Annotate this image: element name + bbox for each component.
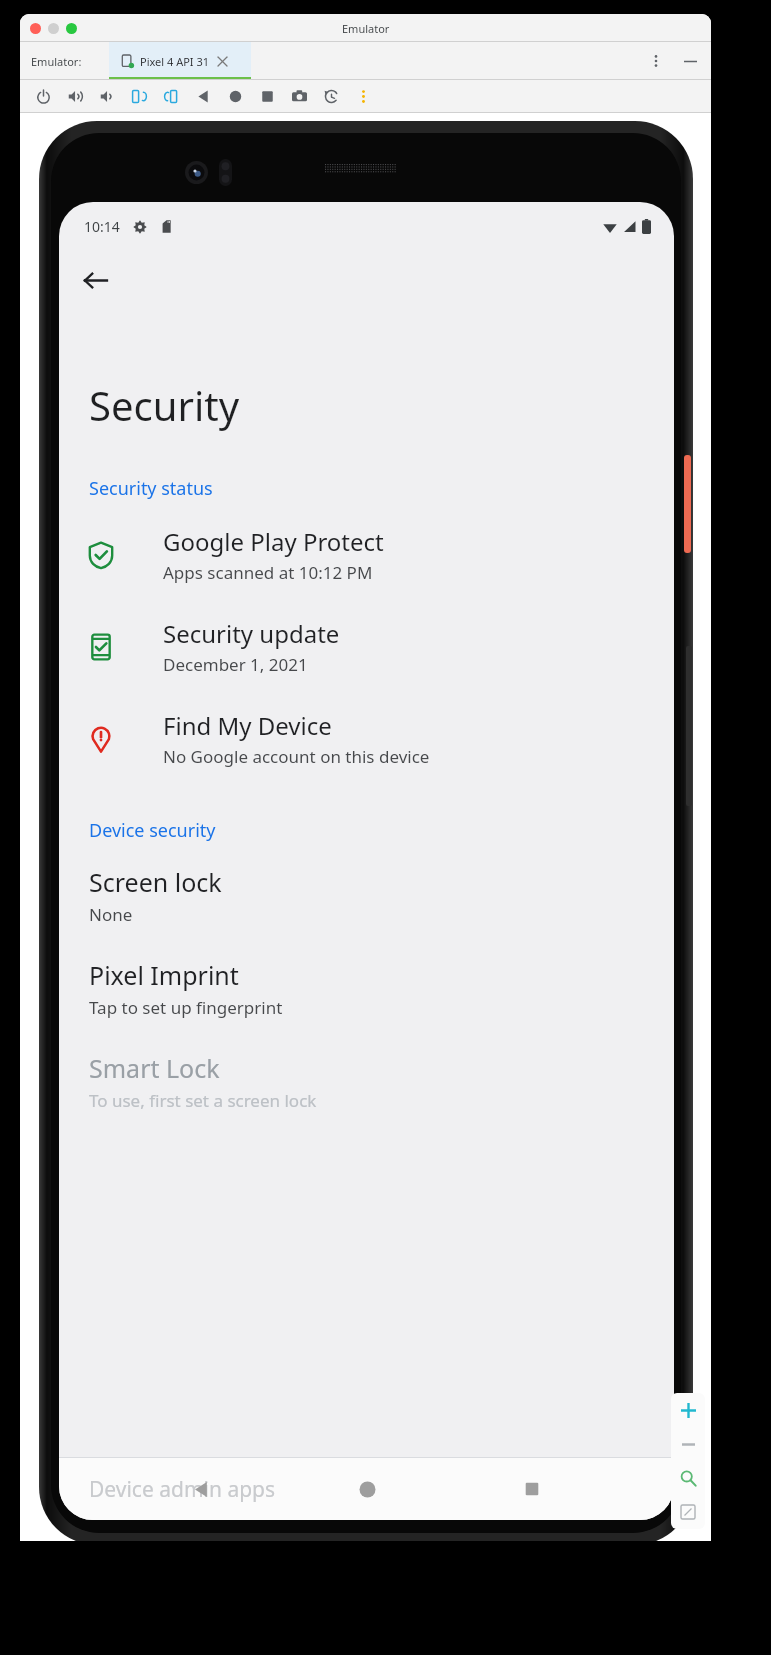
button[interactable]: Back — [194, 87, 213, 106]
button[interactable]: Power — [34, 87, 53, 106]
button[interactable]: Volume up — [66, 87, 85, 106]
button[interactable]: Back — [71, 256, 119, 304]
button[interactable]: Zoom in — [671, 1393, 705, 1427]
staticText: To use, first set a screen lock — [89, 1089, 317, 1112]
button[interactable]: Overview — [258, 87, 277, 106]
button[interactable]: Minimize — [681, 52, 699, 70]
button[interactable]: Smart Lock — [59, 1049, 674, 1114]
button[interactable]: Volume down — [98, 87, 117, 106]
button[interactable]: Pixel 4 API 31 — [109, 42, 251, 80]
staticText: Smart Lock — [89, 1051, 220, 1085]
staticText: No Google account on this device — [163, 745, 430, 768]
staticText: Security status — [89, 476, 213, 501]
button[interactable]: Rotate right — [162, 87, 181, 106]
button[interactable]: Google Play Protect — [59, 521, 674, 588]
staticText: 10:14 — [84, 217, 120, 236]
button[interactable]: More — [354, 87, 373, 106]
button[interactable]: Security update — [59, 613, 674, 680]
button[interactable]: Home — [344, 1466, 390, 1512]
button[interactable]: Find My Device — [59, 705, 674, 772]
button[interactable]: Fit to window — [671, 1495, 705, 1529]
staticText: None — [89, 903, 133, 926]
staticText: December 1, 2021 — [163, 653, 308, 676]
staticText: Find My Device — [163, 709, 332, 742]
button[interactable]: Screenshot — [290, 87, 309, 106]
staticText: Pixel Imprint — [89, 958, 239, 992]
staticText: Emulator — [342, 21, 390, 36]
button[interactable]: Pixel Imprint — [59, 956, 674, 1021]
staticText: Emulator: — [31, 54, 82, 69]
staticText: Tap to set up fingerprint — [89, 996, 283, 1019]
button[interactable]: Screen lock — [59, 863, 674, 928]
button[interactable]: More options — [647, 52, 665, 70]
button[interactable]: Home — [226, 87, 245, 106]
staticText: Pixel 4 API 31 — [140, 54, 210, 69]
staticText: Google Play Protect — [163, 525, 384, 558]
button[interactable]: Zoom reset — [671, 1461, 705, 1495]
button[interactable]: Rotate left — [130, 87, 149, 106]
button[interactable]: Overview — [509, 1466, 555, 1512]
staticText: Screen lock — [89, 865, 222, 899]
staticText: Device admin apps — [89, 1475, 276, 1504]
button[interactable]: History — [322, 87, 341, 106]
staticText: Security update — [163, 617, 340, 650]
staticText: Security — [89, 378, 240, 432]
button[interactable]: Zoom out — [671, 1427, 705, 1461]
staticText: Device security — [89, 818, 216, 843]
staticText: Apps scanned at 10:12 PM — [163, 561, 373, 584]
button[interactable]: Back — [178, 1466, 224, 1512]
